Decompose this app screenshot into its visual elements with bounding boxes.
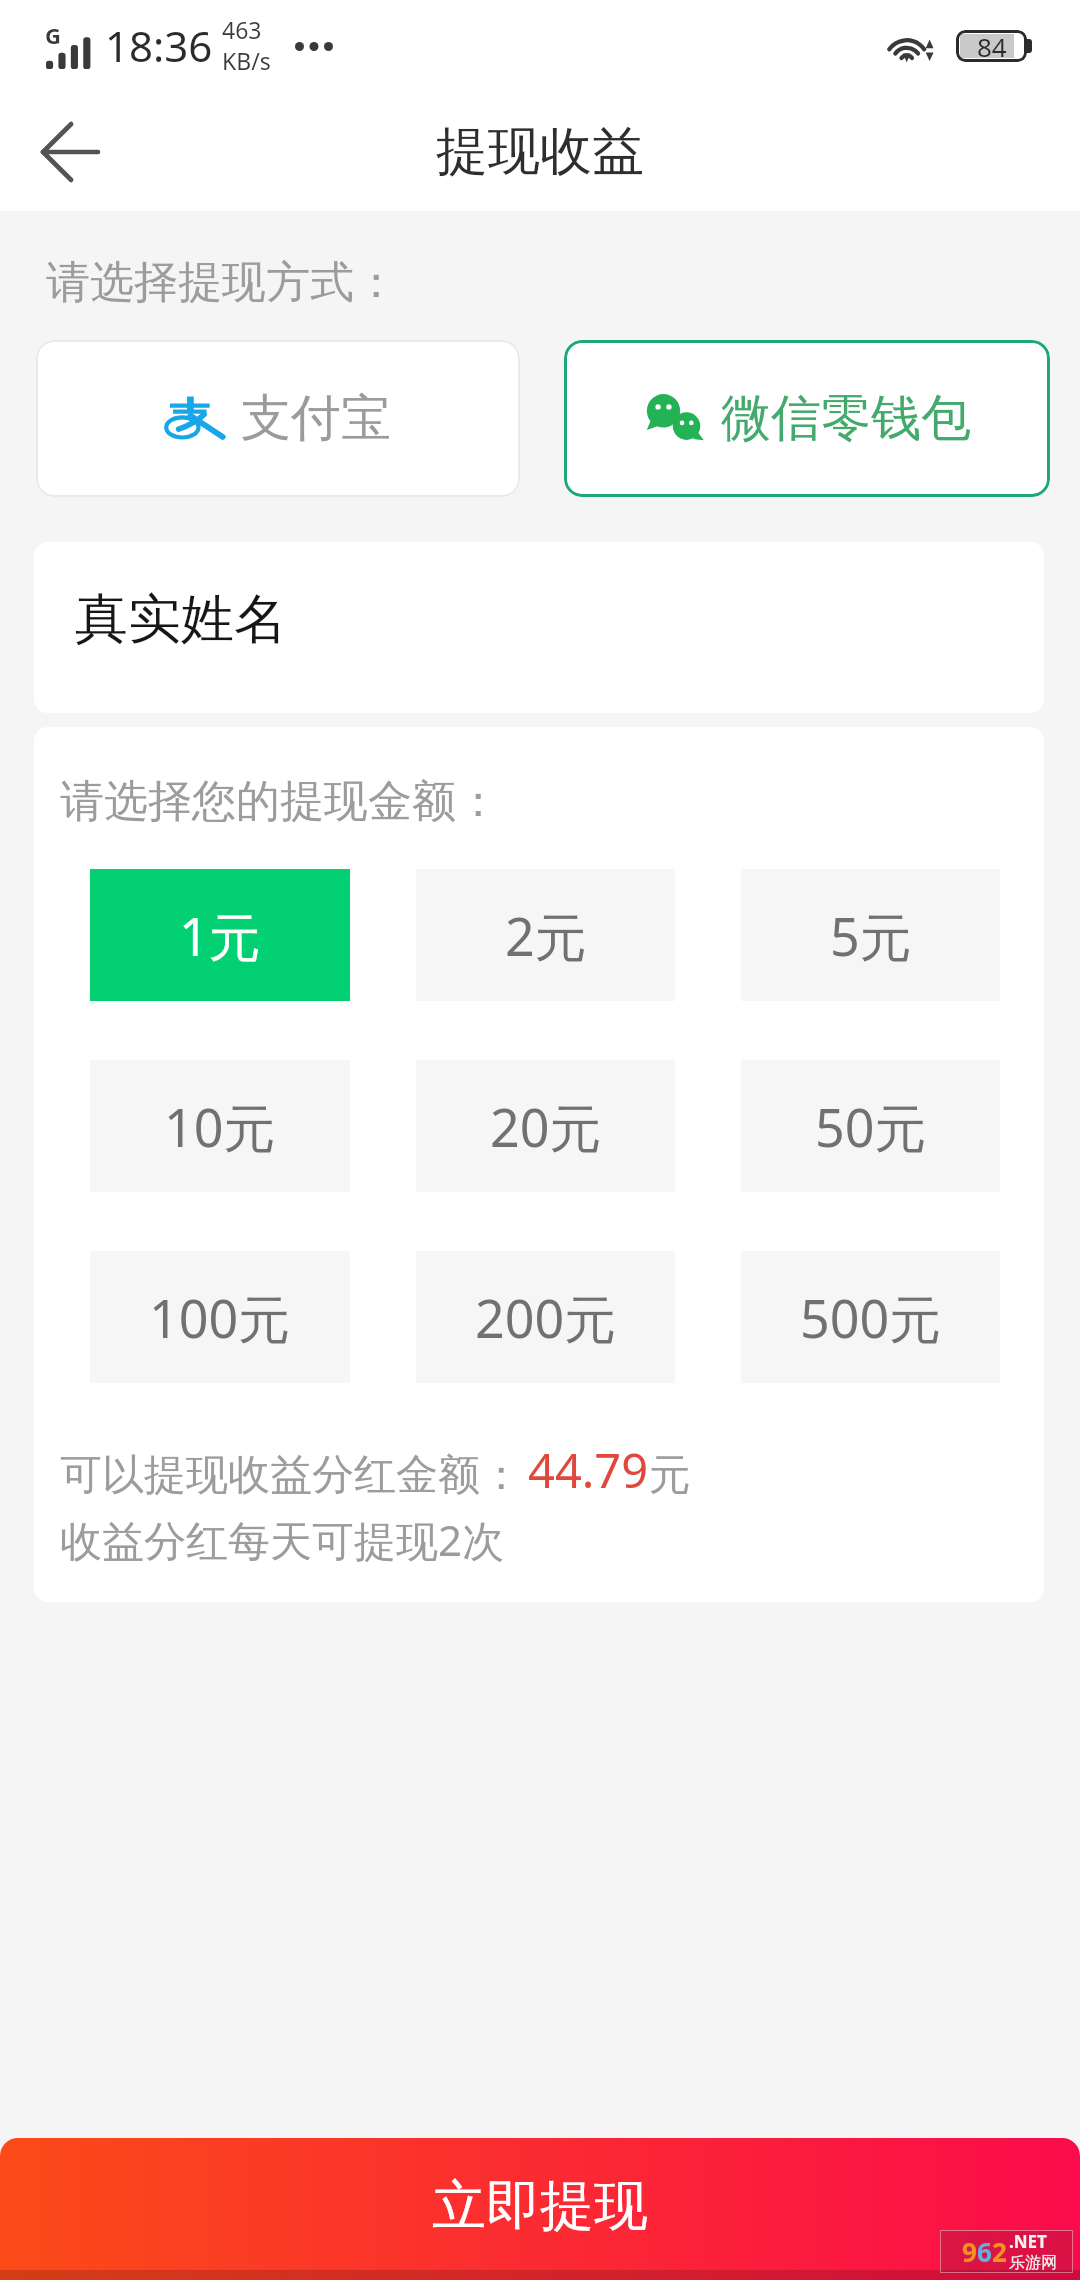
button[interactable]: 10元 xyxy=(90,1060,350,1192)
staticText: KB/s xyxy=(222,45,271,76)
button[interactable]: 支付宝 xyxy=(36,340,520,497)
staticText: 10元 xyxy=(164,1091,276,1162)
staticText: 2 xyxy=(992,2234,1007,2269)
button[interactable]: 20元 xyxy=(416,1060,675,1192)
staticText: 收益分红每天可提现2次 xyxy=(60,1511,505,1568)
staticText: 立即提现 xyxy=(432,2172,648,2240)
staticText: 18:36 xyxy=(105,17,213,74)
staticText: 20元 xyxy=(490,1091,602,1162)
staticText: .NET xyxy=(1009,2230,1047,2253)
staticText: 提现收益 xyxy=(436,119,644,185)
staticText: 微信零钱包 xyxy=(721,387,971,450)
staticText: 乐游网 xyxy=(1009,2253,1057,2273)
button[interactable]: 50元 xyxy=(741,1060,1000,1192)
staticText: 1元 xyxy=(179,900,261,971)
staticText: 100元 xyxy=(149,1282,291,1353)
button[interactable]: 200元 xyxy=(416,1251,675,1383)
staticText: 6 xyxy=(977,2234,992,2269)
staticText: 2元 xyxy=(505,900,587,971)
staticText: 真实姓名 xyxy=(75,586,287,653)
button[interactable]: 立即提现 xyxy=(0,2138,1080,2280)
staticText: 5元 xyxy=(830,900,912,971)
staticText: 请选择提现方式： xyxy=(46,255,398,310)
staticText: 元 xyxy=(649,1449,691,1502)
staticText: G xyxy=(45,20,61,50)
staticText: 请选择您的提现金额： xyxy=(60,774,500,829)
button[interactable]: 5元 xyxy=(741,869,1000,1001)
staticText: 9 xyxy=(962,2234,977,2269)
staticText: 可以提现收益分红金额： xyxy=(60,1449,522,1502)
staticText: 支付宝 xyxy=(241,387,391,450)
staticText: 50元 xyxy=(815,1091,927,1162)
button[interactable]: Back xyxy=(15,97,125,207)
button[interactable]: 1元 xyxy=(90,869,350,1001)
button[interactable]: 微信零钱包 xyxy=(564,340,1050,497)
button[interactable]: 2元 xyxy=(416,869,675,1001)
staticText: 84 xyxy=(977,30,1007,61)
staticText: 463 xyxy=(222,14,262,45)
staticText: 44.79 xyxy=(528,1438,649,1502)
staticText: 500元 xyxy=(800,1282,942,1353)
button[interactable]: 真实姓名 xyxy=(34,542,1044,713)
button[interactable]: 100元 xyxy=(90,1251,350,1383)
button[interactable]: 500元 xyxy=(741,1251,1000,1383)
staticText: 200元 xyxy=(475,1282,617,1353)
